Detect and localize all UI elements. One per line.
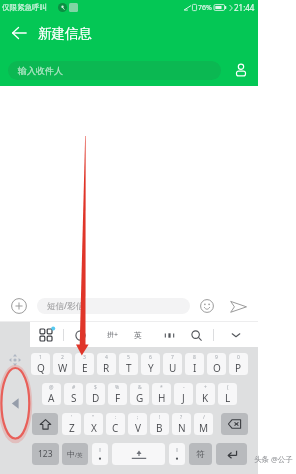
button[interactable]: Hide keyboard xyxy=(226,325,246,345)
button[interactable]: ( xyxy=(218,383,237,405)
button[interactable]: @ xyxy=(42,383,61,405)
staticText: G xyxy=(136,391,144,405)
staticText: E xyxy=(82,361,88,375)
staticText: D xyxy=(92,391,100,405)
button[interactable]: 输入收件人 xyxy=(8,61,221,80)
staticText: L xyxy=(225,391,231,405)
button[interactable]: Emoji xyxy=(196,295,218,317)
button[interactable]: Voice input xyxy=(70,325,90,345)
button[interactable]: 4 xyxy=(97,353,116,375)
button[interactable]: Collapse keyboard xyxy=(7,395,23,411)
button[interactable]: English mode xyxy=(128,325,148,345)
staticText: ( xyxy=(227,384,229,391)
staticText: 3 xyxy=(83,354,86,361)
button[interactable]: - xyxy=(174,383,193,405)
button[interactable]: Add attachment xyxy=(7,294,31,318)
staticText: * xyxy=(160,384,163,391)
button[interactable]: " xyxy=(84,413,103,435)
staticText: @ xyxy=(49,384,54,391)
button[interactable]: ; xyxy=(128,413,147,435)
staticText: I xyxy=(193,361,197,375)
button[interactable]: % xyxy=(108,383,127,405)
button[interactable]: Backspace xyxy=(221,413,248,435)
staticText: 中 xyxy=(67,449,75,459)
button[interactable]: 短信/彩信 xyxy=(37,298,190,314)
button[interactable]: ? xyxy=(172,413,191,435)
button[interactable]: 5 xyxy=(119,353,138,375)
button[interactable]: 0 xyxy=(229,353,248,375)
staticText: 5 xyxy=(127,354,130,361)
staticText: 新建信息 xyxy=(38,25,92,42)
button[interactable]: ! xyxy=(150,413,169,435)
staticText: & xyxy=(138,384,142,391)
button[interactable]: Period xyxy=(169,443,185,465)
button[interactable]: 9 xyxy=(207,353,226,375)
staticText: M xyxy=(199,421,209,435)
button[interactable]: Pinyin mode xyxy=(103,325,123,345)
staticText: 4 xyxy=(105,354,108,361)
staticText: W xyxy=(58,361,68,375)
button[interactable]: ' xyxy=(62,413,81,435)
button[interactable]: Sound settings xyxy=(159,325,179,345)
staticText: 9 xyxy=(215,354,218,361)
staticText: $ xyxy=(94,384,97,391)
button[interactable]: Space xyxy=(112,443,165,465)
button[interactable]: 1 xyxy=(31,353,50,375)
button[interactable]: : xyxy=(106,413,125,435)
button[interactable]: Language xyxy=(62,443,88,465)
staticText: K xyxy=(202,391,209,405)
button[interactable]: Move keyboard xyxy=(7,352,22,367)
button[interactable]: Shift xyxy=(32,413,58,435)
staticText: X xyxy=(91,421,97,435)
staticText: J xyxy=(182,391,185,405)
staticText: : xyxy=(115,414,117,421)
staticText: B xyxy=(156,421,163,435)
button[interactable]: Search xyxy=(186,325,206,345)
button[interactable]: / xyxy=(194,413,213,435)
staticText: % xyxy=(115,384,120,391)
staticText: T xyxy=(126,361,132,375)
button[interactable]: # xyxy=(64,383,83,405)
button[interactable]: Comma xyxy=(92,443,108,465)
button[interactable]: Back xyxy=(6,20,32,46)
button[interactable]: Symbols xyxy=(189,443,212,465)
staticText: - xyxy=(183,384,185,391)
staticText: ' xyxy=(71,414,73,421)
staticText: Y xyxy=(148,361,154,375)
staticText: /英 xyxy=(75,451,83,459)
staticText: S xyxy=(71,391,77,405)
staticText: O xyxy=(213,361,221,375)
staticText: 拼+ xyxy=(107,330,119,340)
staticText: 英 xyxy=(134,330,142,340)
button[interactable]: 7 xyxy=(163,353,182,375)
staticText: C xyxy=(112,421,119,435)
staticText: 7 xyxy=(171,354,174,361)
staticText: V xyxy=(135,421,141,435)
button[interactable]: 2 xyxy=(53,353,72,375)
button[interactable]: 3 xyxy=(75,353,94,375)
staticText: A xyxy=(48,391,55,405)
staticText: + xyxy=(204,384,207,391)
staticText: ! xyxy=(159,414,161,421)
button[interactable]: 8 xyxy=(185,353,204,375)
staticText: ; xyxy=(137,414,139,421)
staticText: ? xyxy=(180,414,183,421)
button[interactable]: Add recipient xyxy=(230,59,252,81)
button[interactable]: $ xyxy=(86,383,105,405)
button[interactable]: & xyxy=(130,383,149,405)
button[interactable]: Enter xyxy=(216,443,247,465)
staticText: 21:44 xyxy=(234,2,255,13)
button[interactable]: Numbers xyxy=(32,443,59,465)
button[interactable]: Keyboard apps xyxy=(36,325,56,345)
staticText: 头条 @公子 xyxy=(254,454,293,464)
button[interactable]: Send xyxy=(226,294,250,318)
staticText: P xyxy=(235,361,242,375)
staticText: 短信/彩信 xyxy=(47,300,85,312)
staticText: 6 xyxy=(149,354,152,361)
button[interactable]: * xyxy=(152,383,171,405)
staticText: H xyxy=(158,391,166,405)
button[interactable]: 6 xyxy=(141,353,160,375)
staticText: 符 xyxy=(196,449,205,460)
button[interactable]: + xyxy=(196,383,215,405)
staticText: 0 xyxy=(237,354,240,361)
